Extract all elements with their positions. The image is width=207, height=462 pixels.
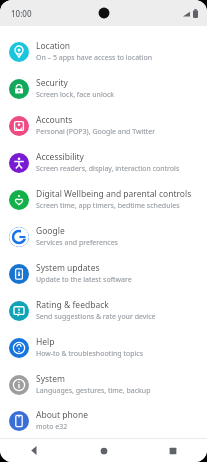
- staticText: System updates: [36, 262, 100, 274]
- staticText: Google: [36, 225, 65, 237]
- staticText: Location: [36, 40, 71, 52]
- staticText: Accounts: [36, 114, 73, 126]
- staticText: Help: [36, 336, 55, 348]
- button[interactable]: Accessibility: [0, 144, 207, 181]
- button[interactable]: About phone: [0, 403, 207, 438]
- staticText: Screen time, app timers, bedtime schedul…: [36, 201, 180, 211]
- staticText: 10:00: [11, 8, 32, 19]
- staticText: About phone: [36, 409, 89, 421]
- staticText: System: [36, 373, 65, 385]
- staticText: Personal (POP3), Google and Twitter: [36, 127, 156, 137]
- staticText: Accessibility: [36, 151, 84, 163]
- button[interactable]: Back: [0, 439, 69, 462]
- staticText: Languages, gestures, time, backup: [36, 386, 151, 396]
- staticText: Services and preferences: [36, 238, 118, 248]
- button[interactable]: Help: [0, 329, 207, 366]
- button[interactable]: Security: [0, 70, 207, 107]
- staticText: Digital Wellbeing and parental controls: [36, 188, 192, 200]
- button[interactable]: Digital Wellbeing and parental controls: [0, 181, 207, 218]
- staticText: Screen lock, face unlock: [36, 90, 115, 100]
- staticText: On – 5 apps have access to location: [36, 53, 152, 63]
- staticText: Send suggestions & rate your device: [36, 312, 156, 322]
- button[interactable]: Rating & feedback: [0, 292, 207, 329]
- button[interactable]: Recent apps: [138, 439, 207, 462]
- button[interactable]: Accounts: [0, 107, 207, 144]
- button[interactable]: System: [0, 366, 207, 403]
- staticText: Security: [36, 77, 68, 89]
- staticText: Rating & feedback: [36, 299, 109, 311]
- button[interactable]: Google: [0, 218, 207, 255]
- staticText: How-to & troubleshooting topics: [36, 349, 143, 359]
- staticText: Screen readers, display, interaction con…: [36, 164, 180, 174]
- button[interactable]: System updates: [0, 255, 207, 292]
- button[interactable]: Location: [0, 33, 207, 70]
- button[interactable]: Home: [69, 439, 138, 462]
- staticText: moto e32: [36, 422, 68, 432]
- staticText: Update to the latest software: [36, 275, 132, 285]
